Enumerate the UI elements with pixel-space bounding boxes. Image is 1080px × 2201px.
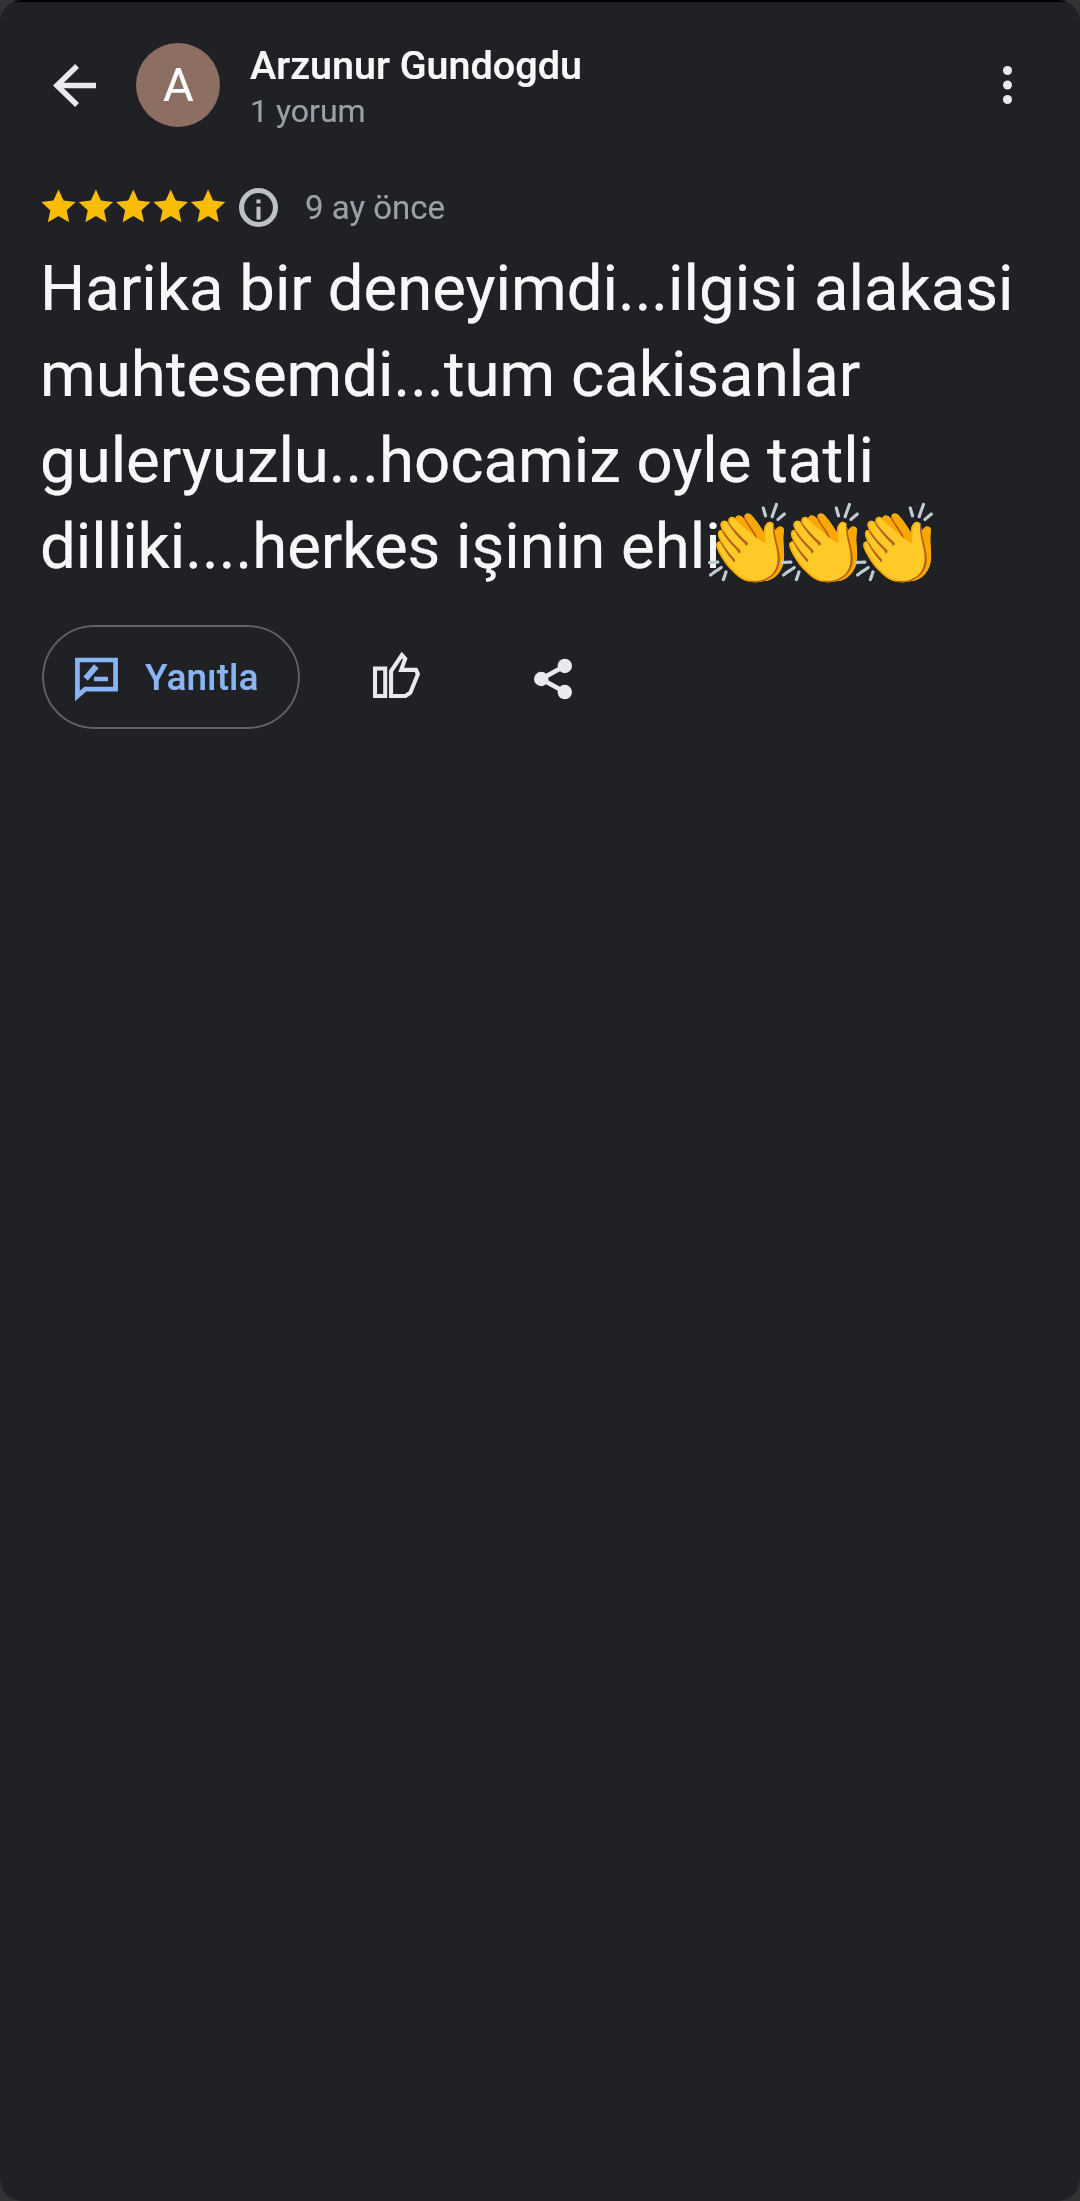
staticText: Arzunur Gundogdu (250, 42, 582, 88)
button[interactable]: More options (959, 37, 1055, 133)
staticText: 👏 (774, 500, 872, 591)
button[interactable]: Back (26, 37, 122, 133)
button[interactable]: Share (505, 625, 601, 721)
button[interactable]: Yanıtla (42, 625, 300, 729)
staticText: A (163, 57, 194, 112)
button[interactable]: Like (347, 625, 443, 721)
staticText: Harika bir deneyimdi...ilgisi alakasi mu… (40, 251, 1042, 584)
staticText: 👏 (701, 500, 799, 591)
button[interactable]: A (136, 43, 220, 127)
staticText: Yanıtla (145, 656, 259, 699)
staticText: 👏 (848, 500, 946, 591)
staticText: 9 ay önce (305, 188, 446, 227)
staticText: 1 yorum (250, 92, 366, 130)
